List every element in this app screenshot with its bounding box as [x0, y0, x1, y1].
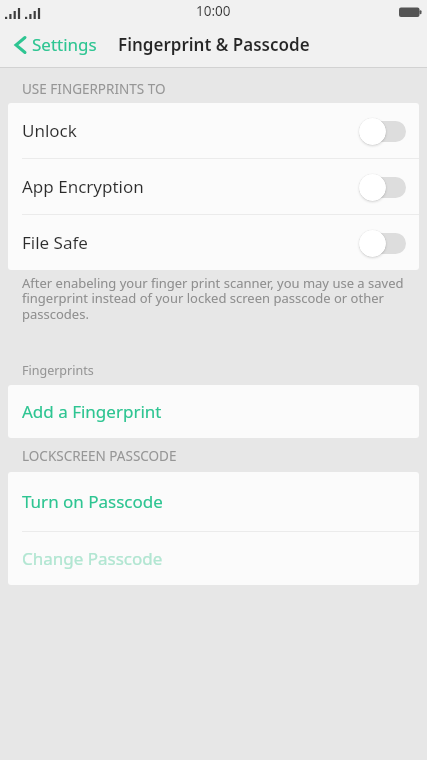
staticText: File Safe: [22, 231, 88, 254]
staticText: Add a Fingerprint: [22, 400, 162, 423]
staticText: Turn on Passcode: [22, 490, 163, 513]
button[interactable]: Change Passcode: [8, 532, 419, 585]
button[interactable]: Add a Fingerprint: [8, 385, 419, 438]
staticText: 10:00: [196, 2, 231, 20]
staticText: Settings: [32, 33, 97, 56]
staticText: USE FINGERPRINTS TO: [22, 80, 166, 98]
staticText: Fingerprint & Passcode: [118, 33, 310, 56]
staticText: LOCKSCREEN PASSCODE: [22, 447, 177, 465]
button[interactable]: Settings: [0, 33, 97, 56]
button[interactable]: Unlock: [8, 103, 419, 158]
staticText: Fingerprints: [22, 362, 94, 379]
staticText: After enabeling your finger print scanne…: [22, 274, 407, 323]
button[interactable]: Turn on Passcode: [8, 472, 419, 531]
staticText: Change Passcode: [22, 547, 163, 570]
staticText: App Encryption: [22, 175, 144, 198]
button[interactable]: File Safe: [8, 215, 419, 270]
staticText: Unlock: [22, 119, 77, 142]
button[interactable]: App Encryption: [8, 159, 419, 214]
